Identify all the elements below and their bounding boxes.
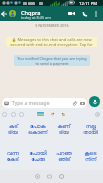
button[interactable]: Type a message: [2, 98, 87, 108]
button[interactable]: GIF: [60, 111, 66, 117]
staticText: today at 8:45 am: [21, 15, 51, 20]
button[interactable]: Home: [45, 172, 54, 181]
button[interactable]: കുട്: [0, 124, 25, 134]
staticText: Type a message: [12, 100, 50, 107]
button[interactable]: Recents: [57, 172, 66, 181]
staticText: കേട്: [7, 157, 19, 161]
button[interactable]: Recent: [1, 111, 7, 117]
staticText: കുട്: [9, 124, 18, 130]
button[interactable]: Attach: [70, 99, 78, 107]
staticText: കണ്: [57, 124, 71, 130]
staticText: You notified Chqpra that you are trying …: [16, 56, 88, 66]
staticText: നല്ല: [86, 124, 96, 130]
button[interactable]: പോക: [25, 124, 51, 134]
button[interactable]: Language: [37, 112, 44, 116]
button[interactable]: 🔒 Messages to this chat and calls are no…: [6, 37, 97, 47]
staticText: ടിയു: [59, 130, 69, 134]
button[interactable]: More options: [92, 6, 100, 21]
button[interactable]: Camera: [78, 99, 86, 107]
staticText: പോക: [30, 124, 46, 130]
button[interactable]: കൂടെ: [77, 151, 103, 161]
staticText: 3 NOVEMBER 2016: [35, 23, 69, 28]
button[interactable]: Contact photo: [9, 10, 16, 17]
staticText: വന്ന: [7, 151, 19, 157]
button[interactable]: Voice message: [89, 96, 100, 107]
button[interactable]: നല്ല: [77, 124, 103, 134]
button[interactable]: കണ്: [51, 124, 77, 134]
staticText: തായി: [83, 130, 98, 134]
staticText: കൂടെ: [84, 151, 97, 157]
button[interactable]: Stickers: [49, 111, 55, 117]
staticText: 🔒 Messages to this chat and calls are no…: [8, 37, 95, 47]
button[interactable]: Settings: [18, 111, 24, 117]
staticText: Chqpra: [21, 9, 41, 17]
staticText: ഞിട്: [58, 157, 71, 161]
button[interactable]: Call: [80, 6, 89, 21]
button[interactable]: You notified Chqpra that you are trying …: [14, 55, 90, 66]
staticText: പറഞ: [56, 151, 72, 157]
staticText: നിന്: [85, 157, 97, 161]
button[interactable]: Back: [33, 172, 42, 181]
button[interactable]: പറഞ: [51, 151, 77, 161]
button[interactable]: പോയി: [25, 151, 51, 161]
staticText: കൊണ്: [28, 130, 48, 134]
button[interactable]: വന്ന: [0, 151, 25, 161]
staticText: 12:11 PM: [79, 1, 98, 7]
staticText: പോയി: [29, 151, 47, 157]
button[interactable]: Back: [0, 6, 8, 21]
button[interactable]: Favorites: [10, 111, 16, 117]
staticText: ടിയു: [8, 130, 18, 134]
button[interactable]: Video call: [67, 6, 76, 21]
button[interactable]: More: [94, 111, 100, 117]
staticText: ചേരു: [31, 157, 45, 161]
